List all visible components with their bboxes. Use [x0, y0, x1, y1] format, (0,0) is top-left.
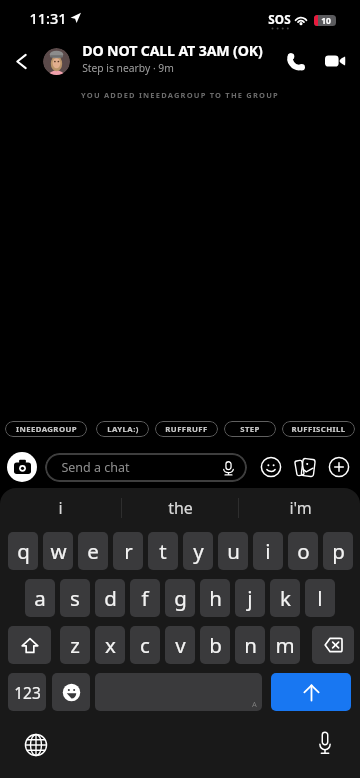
staticText: j: [247, 584, 253, 612]
button[interactable]: v: [165, 626, 195, 664]
staticText: the: [168, 497, 193, 519]
staticText: Send a chat: [61, 459, 130, 476]
staticText: h: [209, 584, 222, 612]
staticText: t: [159, 537, 167, 565]
button[interactable]: z: [60, 626, 90, 664]
button[interactable]: x: [95, 626, 125, 664]
staticText: DO NOT CALL AT 3AM (OK): [82, 41, 263, 60]
button[interactable]: q: [8, 532, 38, 570]
staticText: u: [227, 537, 240, 565]
button[interactable]: l: [305, 579, 335, 617]
staticText: o: [297, 537, 310, 565]
staticText: LAYLA:): [107, 424, 139, 435]
staticText: Step is nearby · 9m: [82, 61, 174, 75]
button[interactable]: p: [323, 532, 353, 570]
staticText: i: [265, 537, 271, 565]
button[interactable]: u: [218, 532, 248, 570]
staticText: n: [244, 631, 257, 659]
staticText: SOS: [268, 11, 291, 27]
staticText: A: [252, 699, 257, 709]
button[interactable]: s: [60, 579, 90, 617]
button[interactable]: Send a chat: [45, 453, 247, 482]
button[interactable]: Video call: [317, 44, 351, 78]
button[interactable]: 123: [8, 673, 46, 711]
staticText: m: [275, 631, 295, 659]
button[interactable]: Voice input: [311, 729, 339, 757]
staticText: STEP: [240, 424, 260, 435]
staticText: 123: [14, 682, 41, 703]
button[interactable]: i'm: [241, 488, 359, 528]
button[interactable]: Back: [4, 44, 38, 78]
button[interactable]: Shift: [8, 626, 51, 664]
staticText: d: [104, 584, 117, 612]
button[interactable]: the: [121, 488, 239, 528]
button[interactable]: r: [113, 532, 143, 570]
button[interactable]: g: [165, 579, 195, 617]
button[interactable]: y: [183, 532, 213, 570]
button[interactable]: i: [253, 532, 283, 570]
staticText: v: [175, 631, 186, 659]
button[interactable]: k: [270, 579, 300, 617]
button[interactable]: Change language: [22, 731, 50, 759]
staticText: RUFFRUFF: [165, 424, 208, 435]
button[interactable]: Add attachment: [327, 455, 351, 479]
staticText: RUFFISCHILL: [291, 424, 346, 435]
button[interactable]: Profile: [43, 48, 70, 75]
button[interactable]: e: [78, 532, 108, 570]
staticText: l: [317, 584, 323, 612]
staticText: b: [209, 631, 222, 659]
staticText: g: [174, 584, 187, 612]
button[interactable]: o: [288, 532, 318, 570]
staticText: 11:31: [29, 8, 67, 28]
staticText: x: [105, 631, 116, 659]
staticText: i'm: [289, 497, 312, 519]
button[interactable]: Emoji keyboard: [52, 673, 90, 711]
button[interactable]: STEP: [224, 421, 276, 437]
button[interactable]: f: [130, 579, 160, 617]
button[interactable]: j: [235, 579, 265, 617]
staticText: 10: [321, 15, 331, 26]
button[interactable]: Camera: [7, 452, 37, 482]
staticText: k: [280, 584, 291, 612]
button[interactable]: w: [43, 532, 73, 570]
button[interactable]: n: [235, 626, 265, 664]
staticText: i: [58, 497, 63, 519]
button[interactable]: Backspace: [312, 626, 354, 664]
staticText: a: [34, 584, 46, 612]
button[interactable]: Stickers: [293, 455, 317, 479]
button[interactable]: h: [200, 579, 230, 617]
button[interactable]: Send: [271, 673, 351, 711]
staticText: q: [17, 537, 30, 565]
staticText: w: [50, 537, 67, 565]
staticText: c: [140, 631, 150, 659]
button[interactable]: m: [270, 626, 300, 664]
staticText: e: [87, 537, 99, 565]
staticText: f: [141, 584, 149, 612]
button[interactable]: LAYLA:): [96, 421, 149, 437]
button[interactable]: Voice message: [218, 458, 238, 478]
staticText: z: [70, 631, 80, 659]
staticText: INEEDAGROUP: [16, 424, 77, 435]
staticText: p: [332, 537, 345, 565]
button[interactable]: c: [130, 626, 160, 664]
button[interactable]: b: [200, 626, 230, 664]
button[interactable]: t: [148, 532, 178, 570]
button[interactable]: Emoji: [259, 455, 283, 479]
button[interactable]: RUFFISCHILL: [282, 421, 355, 437]
button[interactable]: i: [1, 488, 119, 528]
staticText: s: [70, 584, 80, 612]
staticText: YOU ADDED INEEDAGROUP TO THE GROUP: [81, 90, 279, 100]
staticText: y: [193, 537, 204, 565]
button[interactable]: Call: [279, 44, 313, 78]
button[interactable]: INEEDAGROUP: [5, 421, 87, 437]
button[interactable]: a: [25, 579, 55, 617]
staticText: r: [124, 537, 133, 565]
button[interactable]: d: [95, 579, 125, 617]
button[interactable]: RUFFRUFF: [155, 421, 218, 437]
